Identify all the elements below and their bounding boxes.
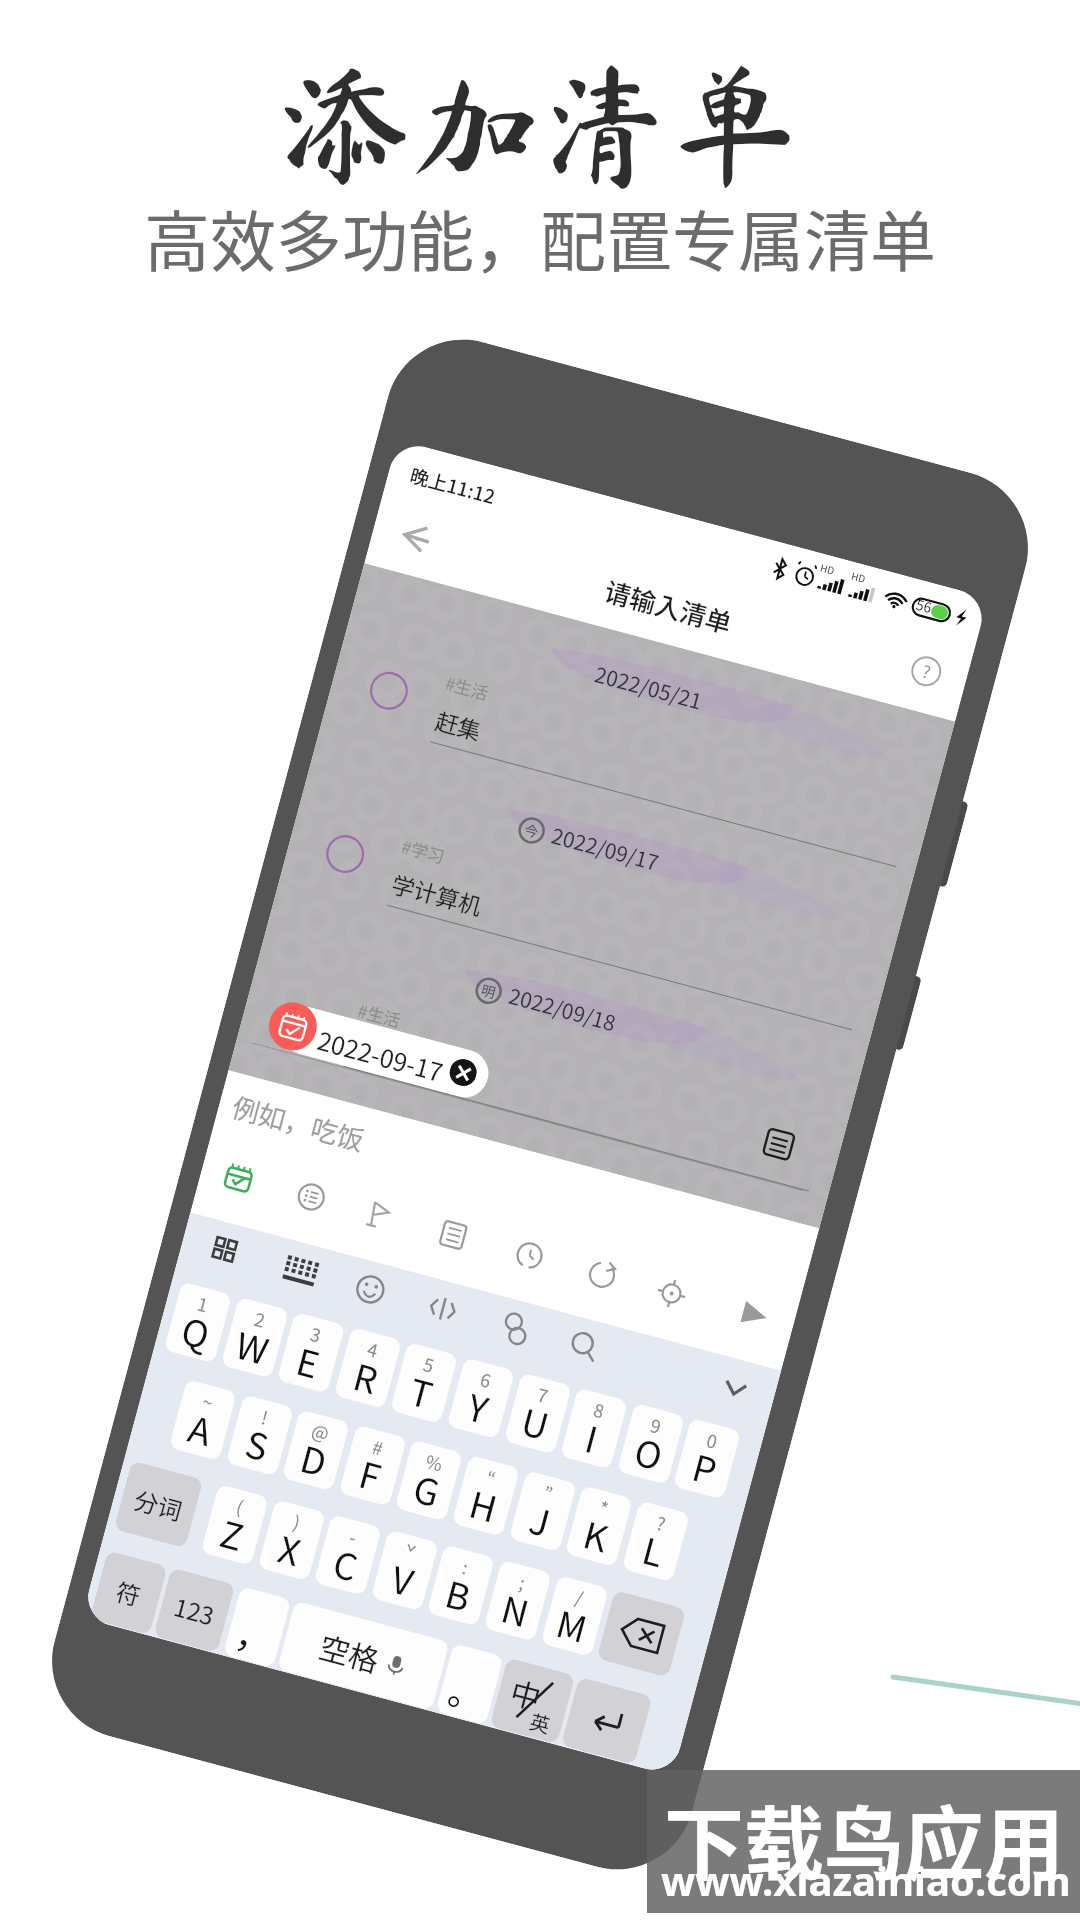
- staticText: %: [423, 1447, 446, 1477]
- staticText: 。: [443, 1662, 492, 1722]
- staticText: HD: [850, 568, 868, 585]
- staticText: H: [464, 1476, 504, 1533]
- staticText: 空格: [315, 1623, 384, 1680]
- button[interactable]: Send: [729, 1291, 778, 1340]
- button[interactable]: Note: [429, 1210, 478, 1259]
- staticText: 明: [479, 979, 498, 1002]
- staticText: D: [295, 1430, 333, 1487]
- staticText: R: [348, 1348, 384, 1404]
- button[interactable]: (: [200, 1484, 269, 1566]
- staticText: 9: [648, 1411, 664, 1439]
- button[interactable]: ~: [169, 1379, 237, 1461]
- staticText: 请输入清单: [601, 571, 737, 642]
- staticText: “: [484, 1463, 499, 1491]
- staticText: 7: [535, 1381, 551, 1408]
- button[interactable]: 空格: [277, 1601, 450, 1711]
- button[interactable]: 9: [617, 1403, 685, 1485]
- button[interactable]: ?: [622, 1500, 690, 1582]
- staticText: 分词: [131, 1481, 186, 1527]
- staticText: 赶集: [432, 703, 485, 746]
- staticText: 2022/09/18: [506, 980, 620, 1037]
- button[interactable]: ，: [223, 1586, 291, 1668]
- button[interactable]: 7: [504, 1372, 572, 1454]
- button[interactable]: Help: [908, 653, 945, 689]
- button[interactable]: ”: [509, 1470, 577, 1552]
- button[interactable]: Toggle done: [366, 667, 412, 714]
- staticText: E: [291, 1333, 326, 1389]
- staticText: ?: [919, 658, 934, 684]
- button[interactable]: 。: [435, 1643, 504, 1725]
- staticText: Q: [176, 1302, 216, 1359]
- button[interactable]: Toggle done: [276, 1004, 322, 1050]
- button[interactable]: ;: [483, 1560, 552, 1642]
- button[interactable]: “: [452, 1455, 520, 1537]
- button[interactable]: Delete: [596, 1590, 686, 1678]
- button[interactable]: 8: [560, 1387, 628, 1469]
- staticText: B: [440, 1565, 477, 1622]
- button[interactable]: 1: [164, 1281, 232, 1363]
- button[interactable]: -: [313, 1514, 382, 1596]
- button[interactable]: Reminder: [505, 1231, 554, 1280]
- button[interactable]: Clear date: [447, 1056, 480, 1089]
- button[interactable]: %: [395, 1439, 463, 1521]
- button[interactable]: Pick date: [263, 997, 322, 1056]
- button[interactable]: 5: [390, 1342, 458, 1424]
- staticText: F: [354, 1446, 387, 1501]
- button[interactable]: Switch input language: [489, 1657, 575, 1744]
- staticText: 晚上11:12: [407, 460, 498, 510]
- button[interactable]: Flag: [354, 1191, 403, 1240]
- button[interactable]: Back: [387, 508, 446, 567]
- staticText: 2022-09-17: [314, 1021, 448, 1089]
- button[interactable]: :: [426, 1544, 495, 1626]
- button[interactable]: Checklist: [287, 1172, 336, 1221]
- button[interactable]: Calendar: [214, 1153, 263, 1202]
- button[interactable]: 分词: [114, 1460, 203, 1548]
- button[interactable]: #: [339, 1424, 407, 1506]
- button[interactable]: Enter: [561, 1677, 653, 1765]
- button[interactable]: ): [257, 1499, 326, 1581]
- button[interactable]: !: [225, 1394, 294, 1476]
- staticText: HD: [819, 560, 837, 577]
- staticText: I: [580, 1410, 604, 1463]
- staticText: 3: [308, 1320, 324, 1348]
- button[interactable]: 3: [277, 1312, 345, 1394]
- staticText: 5: [421, 1350, 437, 1378]
- button[interactable]: Note: [759, 1125, 798, 1164]
- staticText: 4: [365, 1335, 381, 1363]
- staticText: O: [629, 1423, 669, 1481]
- button[interactable]: 2: [221, 1297, 289, 1379]
- button[interactable]: ˇ: [370, 1529, 439, 1611]
- button[interactable]: 6: [447, 1357, 515, 1439]
- staticText: 56: [914, 594, 934, 617]
- staticText: :: [460, 1553, 472, 1580]
- staticText: (: [234, 1493, 247, 1520]
- button[interactable]: @: [282, 1409, 350, 1491]
- staticText: 123: [170, 1588, 218, 1632]
- staticText: #: [370, 1433, 386, 1461]
- staticText: L: [637, 1522, 670, 1577]
- button[interactable]: Location: [647, 1269, 696, 1318]
- staticText: 符: [112, 1573, 145, 1613]
- button[interactable]: /: [540, 1575, 609, 1657]
- button[interactable]: 4: [334, 1327, 402, 1409]
- staticText: -: [347, 1523, 360, 1550]
- staticText: ~: [200, 1387, 216, 1415]
- staticText: 下载鸟应用: [664, 1780, 1064, 1896]
- staticText: 8: [591, 1396, 607, 1423]
- button[interactable]: [277, 1002, 494, 1103]
- staticText: P: [687, 1439, 723, 1495]
- button[interactable]: Repeat: [577, 1250, 626, 1299]
- staticText: G: [408, 1460, 446, 1517]
- button[interactable]: 123: [153, 1567, 235, 1653]
- staticText: 2022/09/17: [549, 819, 663, 877]
- button[interactable]: *: [565, 1485, 633, 1567]
- staticText: /: [573, 1583, 587, 1611]
- staticText: @: [309, 1417, 333, 1446]
- button[interactable]: 0: [673, 1418, 741, 1500]
- staticText: 高效多功能，配置专属清单: [144, 189, 936, 285]
- staticText: N: [496, 1580, 536, 1638]
- staticText: ˇ: [402, 1538, 419, 1566]
- staticText: #生活: [443, 670, 492, 705]
- button[interactable]: Toggle done: [322, 831, 368, 877]
- button[interactable]: 符: [89, 1550, 168, 1635]
